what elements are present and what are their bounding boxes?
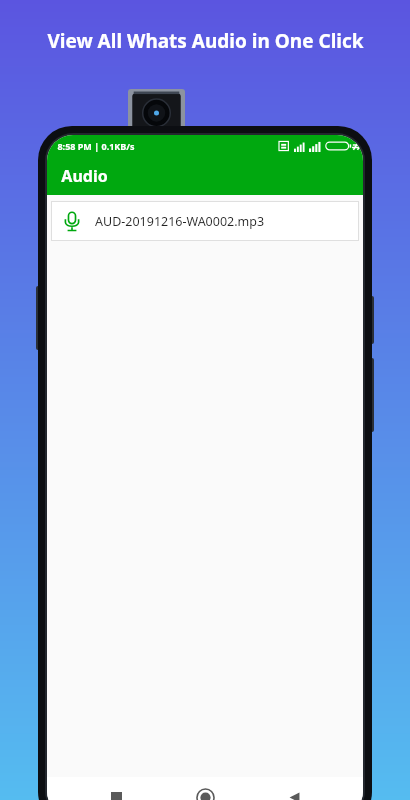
button[interactable]: Home	[185, 777, 225, 800]
staticText: AUD-20191216-WA0002.mp3	[95, 213, 265, 230]
button[interactable]: Recent apps	[96, 777, 136, 800]
staticText: Audio	[61, 165, 108, 187]
button[interactable]: Back	[274, 777, 314, 800]
staticText: 8:58 PM | 0.1KB/s	[57, 140, 135, 152]
button[interactable]: Audio file	[51, 201, 359, 241]
staticText: View All Whats Audio in One Click	[47, 28, 364, 54]
other: Audio file	[61, 210, 83, 232]
